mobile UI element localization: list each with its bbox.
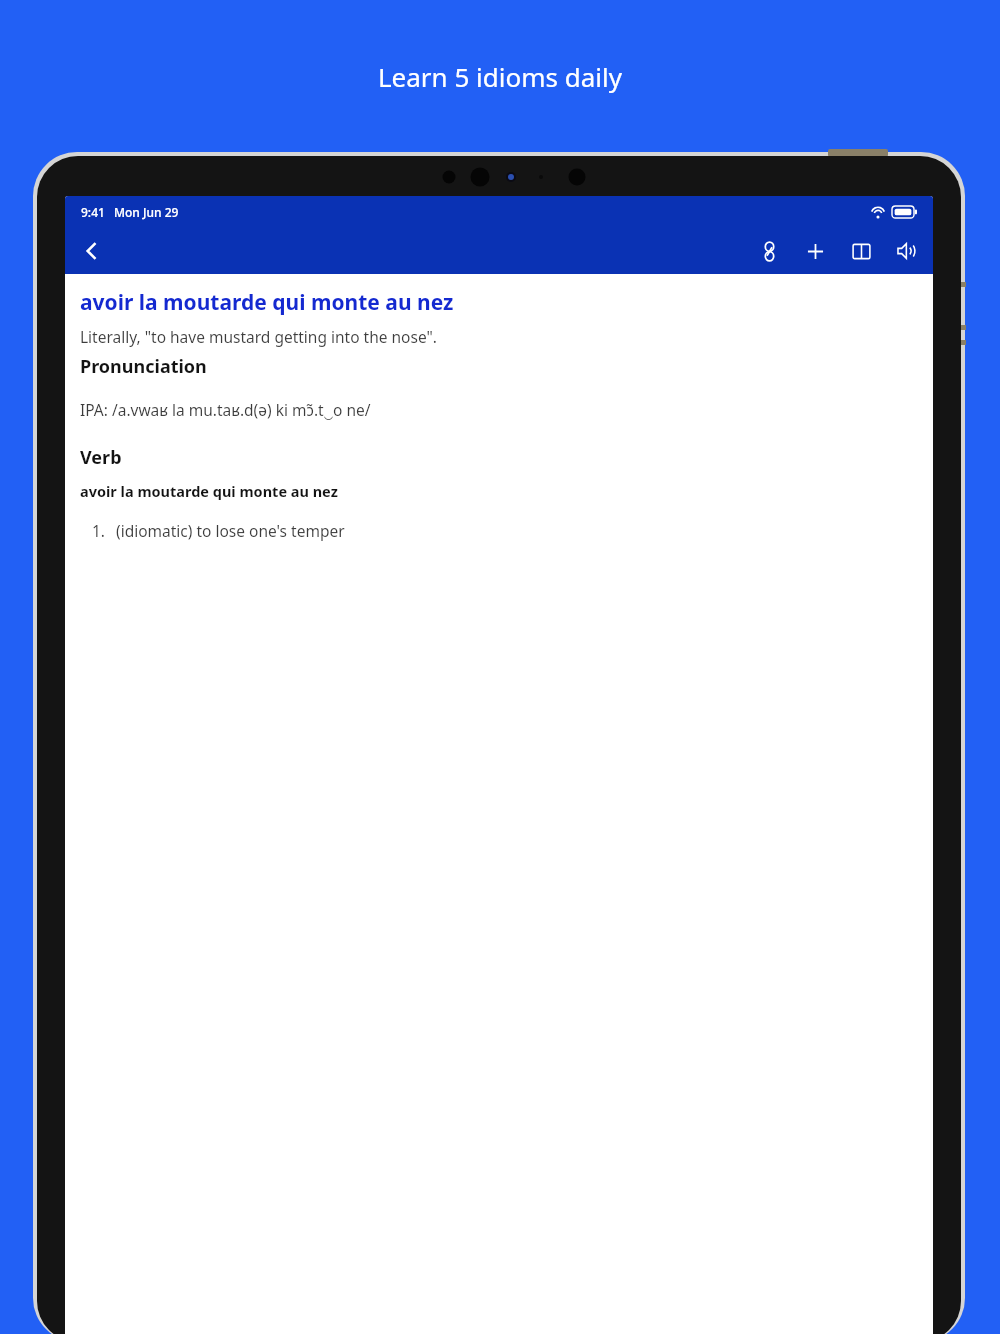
button[interactable]: Add: [798, 234, 832, 268]
other: Power: [828, 149, 888, 157]
button[interactable]: Split view: [844, 234, 878, 268]
button[interactable]: Listen: [890, 234, 924, 268]
staticText: 9:41: [81, 204, 105, 220]
staticText: Mon Jun 29: [114, 204, 179, 220]
staticText: Learn 5 idioms daily: [378, 59, 622, 94]
staticText: IPA: /a.vwaʁ la mu.taʁ.d(ə) ki mɔ̃.t‿o n…: [80, 399, 371, 420]
staticText: Verb: [80, 445, 122, 470]
staticText: avoir la moutarde qui monte au nez: [80, 288, 454, 317]
button[interactable]: Back: [70, 229, 114, 273]
staticText: Pronunciation: [80, 354, 207, 379]
staticText: Literally, "to have mustard getting into…: [80, 326, 437, 347]
button[interactable]: Copy link: [752, 234, 786, 268]
staticText: avoir la moutarde qui monte au nez: [80, 481, 338, 501]
staticText: (idiomatic) to lose one's temper: [116, 520, 345, 541]
staticText: 1.: [92, 520, 106, 541]
